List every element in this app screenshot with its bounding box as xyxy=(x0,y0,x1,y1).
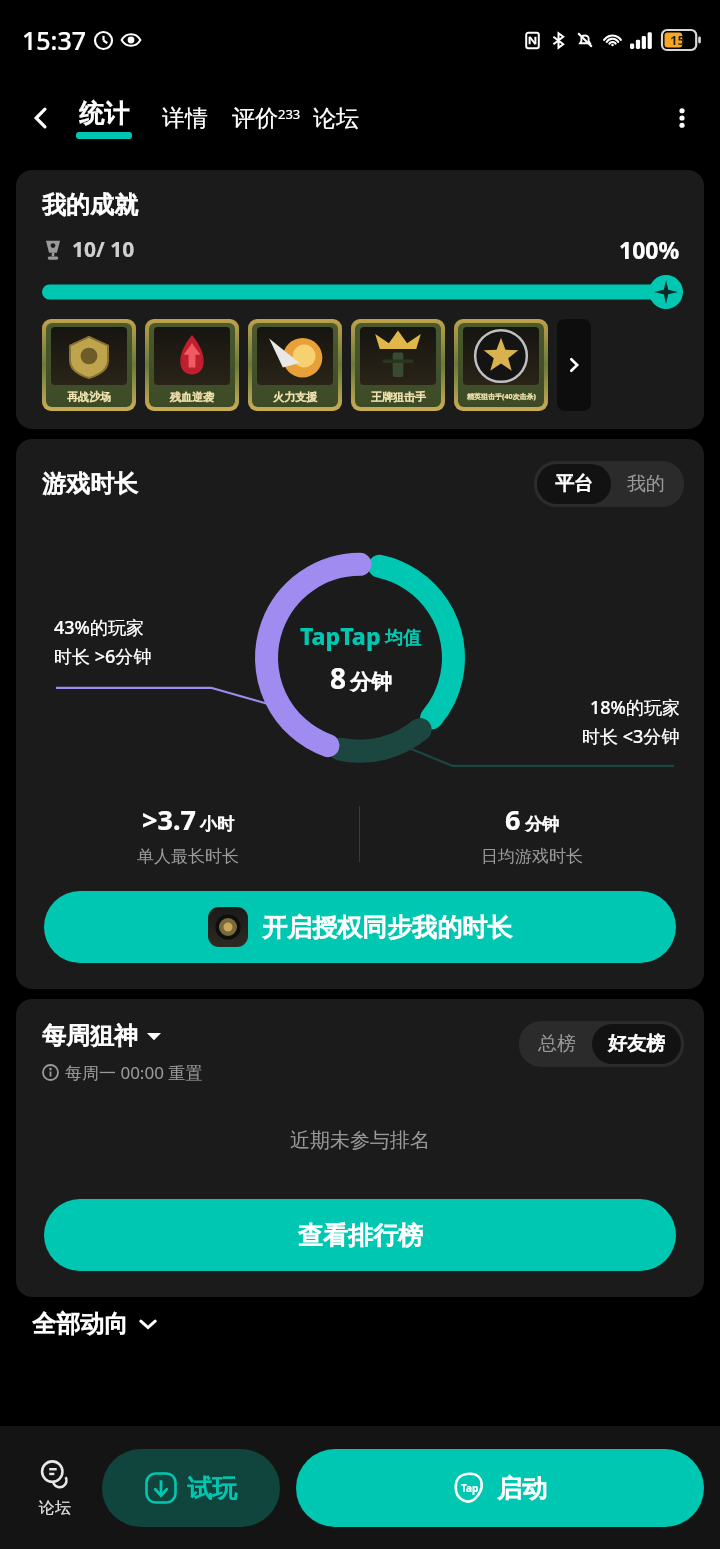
staticText: 全部动向 xyxy=(32,1309,128,1339)
staticText: 18%的玩家 xyxy=(590,695,680,720)
staticText: 时长 <3分钟 xyxy=(582,724,680,749)
button[interactable]: 详情 xyxy=(160,104,210,133)
staticText: 开启授权同步我的时长 xyxy=(262,912,512,943)
staticText: 查看排行榜 xyxy=(298,1220,423,1251)
button[interactable]: 我的 xyxy=(611,464,681,504)
button[interactable]: 好友榜 xyxy=(592,1024,681,1064)
staticText: 10/ 10 xyxy=(72,235,135,264)
staticText: 15:37 xyxy=(22,23,87,57)
staticText: 启动 xyxy=(497,1473,547,1504)
staticText: 平台 xyxy=(555,472,593,496)
staticText: 时长 >6分钟 xyxy=(54,644,152,669)
staticText: 火力支援 xyxy=(273,390,317,404)
staticText: 单人最长时长 xyxy=(137,846,239,867)
staticText: 近期未参与排名 xyxy=(16,1128,704,1153)
button[interactable]: 评价 xyxy=(232,104,301,133)
button[interactable]: 全部动向 xyxy=(32,1309,720,1339)
staticText: 详情 xyxy=(162,104,208,133)
button[interactable]: 火力支援 xyxy=(248,319,342,411)
staticText: >3.7 xyxy=(142,801,196,838)
staticText: 100% xyxy=(619,234,680,265)
staticText: 6 xyxy=(505,801,521,838)
staticText: 均值 xyxy=(385,627,421,650)
button[interactable]: 统计 xyxy=(70,98,138,139)
staticText: 好友榜 xyxy=(608,1032,665,1056)
button[interactable]: 精英狙击手(40次击杀) xyxy=(454,319,548,411)
staticText: 统计 xyxy=(79,98,129,129)
staticText: 日均游戏时长 xyxy=(481,846,583,867)
button[interactable]: 我的成就 xyxy=(16,170,704,429)
staticText: 小时 xyxy=(200,814,234,835)
button[interactable]: Back xyxy=(18,95,64,141)
staticText: 15 xyxy=(670,31,685,49)
button[interactable]: 平台 xyxy=(537,464,611,504)
staticText: 233 xyxy=(278,105,301,123)
staticText: 评价 xyxy=(232,104,278,133)
staticText: 8 xyxy=(330,659,347,697)
staticText: 我的成就 xyxy=(42,190,138,220)
staticText: 分钟 xyxy=(525,814,559,835)
staticText: 分钟 xyxy=(350,669,392,695)
button[interactable]: 每周狙神 xyxy=(42,1021,162,1051)
staticText: 残血逆袭 xyxy=(170,390,214,404)
staticText: 试玩 xyxy=(187,1473,237,1504)
staticText: 论坛 xyxy=(39,1498,71,1518)
button[interactable]: 王牌狙击手 xyxy=(351,319,445,411)
button[interactable]: 开启授权同步我的时长 xyxy=(44,891,676,963)
staticText: 王牌狙击手 xyxy=(371,390,426,404)
staticText: 再战沙场 xyxy=(67,390,111,404)
button[interactable]: More options xyxy=(660,96,704,140)
staticText: 总榜 xyxy=(538,1032,576,1056)
button[interactable]: 残血逆袭 xyxy=(145,319,239,411)
staticText: 游戏时长 xyxy=(42,469,138,499)
staticText: 每周狙神 xyxy=(42,1021,138,1051)
button[interactable]: 查看排行榜 xyxy=(44,1199,676,1271)
button[interactable]: 试玩 xyxy=(102,1449,280,1527)
staticText: 每周一 00:00 重置 xyxy=(65,1061,203,1084)
button[interactable]: More achievements xyxy=(557,319,591,411)
staticText: 43%的玩家 xyxy=(54,615,144,640)
staticText: TapTap xyxy=(300,620,381,651)
staticText: 精英狙击手(40次击杀) xyxy=(467,392,536,402)
button[interactable]: Tap xyxy=(296,1449,704,1527)
button[interactable]: 论坛 xyxy=(311,104,361,133)
staticText: 我的 xyxy=(627,472,665,496)
button[interactable]: 论坛 xyxy=(16,1426,94,1549)
button[interactable]: 总榜 xyxy=(522,1024,592,1064)
button[interactable]: 再战沙场 xyxy=(42,319,136,411)
staticText: 论坛 xyxy=(313,104,359,133)
staticText: Tap xyxy=(461,1481,479,1495)
